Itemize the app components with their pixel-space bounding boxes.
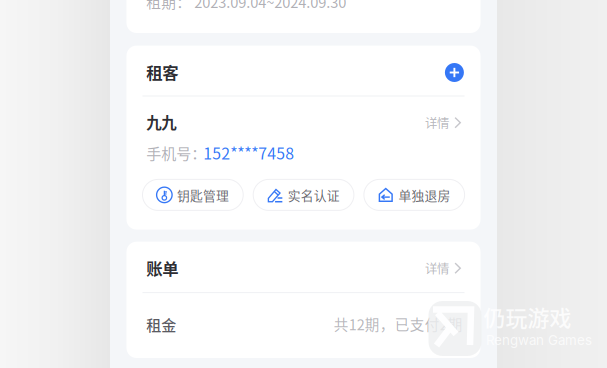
staticText: 详情 [425,114,449,132]
staticText: 账单 [146,256,178,280]
staticText: 详情 [425,259,449,277]
button[interactable]: 详情 [425,111,461,135]
button[interactable]: 添加租客 [445,63,464,82]
staticText: 单独退房 [398,186,450,204]
staticText: 租期： 2023.09.04~2024.09.30 [146,0,346,12]
staticText: 仍玩游戏 [483,301,571,333]
staticText: 租金 [146,313,176,335]
staticText: 152****7458 [203,141,294,164]
staticText: 手机号： [146,142,206,164]
button[interactable]: 钥匙管理 [142,179,243,210]
staticText: 钥匙管理 [177,186,229,204]
staticText: 租客 [146,60,178,84]
staticText: 共12期，已支付2期 [334,313,463,334]
button[interactable]: 详情 [425,256,461,280]
staticText: 九九 [146,111,176,133]
staticText: 实名认证 [288,186,340,204]
button[interactable]: 单独退房 [364,179,465,210]
staticText: Rengwan Games [486,332,592,348]
button[interactable]: 实名认证 [253,179,354,210]
